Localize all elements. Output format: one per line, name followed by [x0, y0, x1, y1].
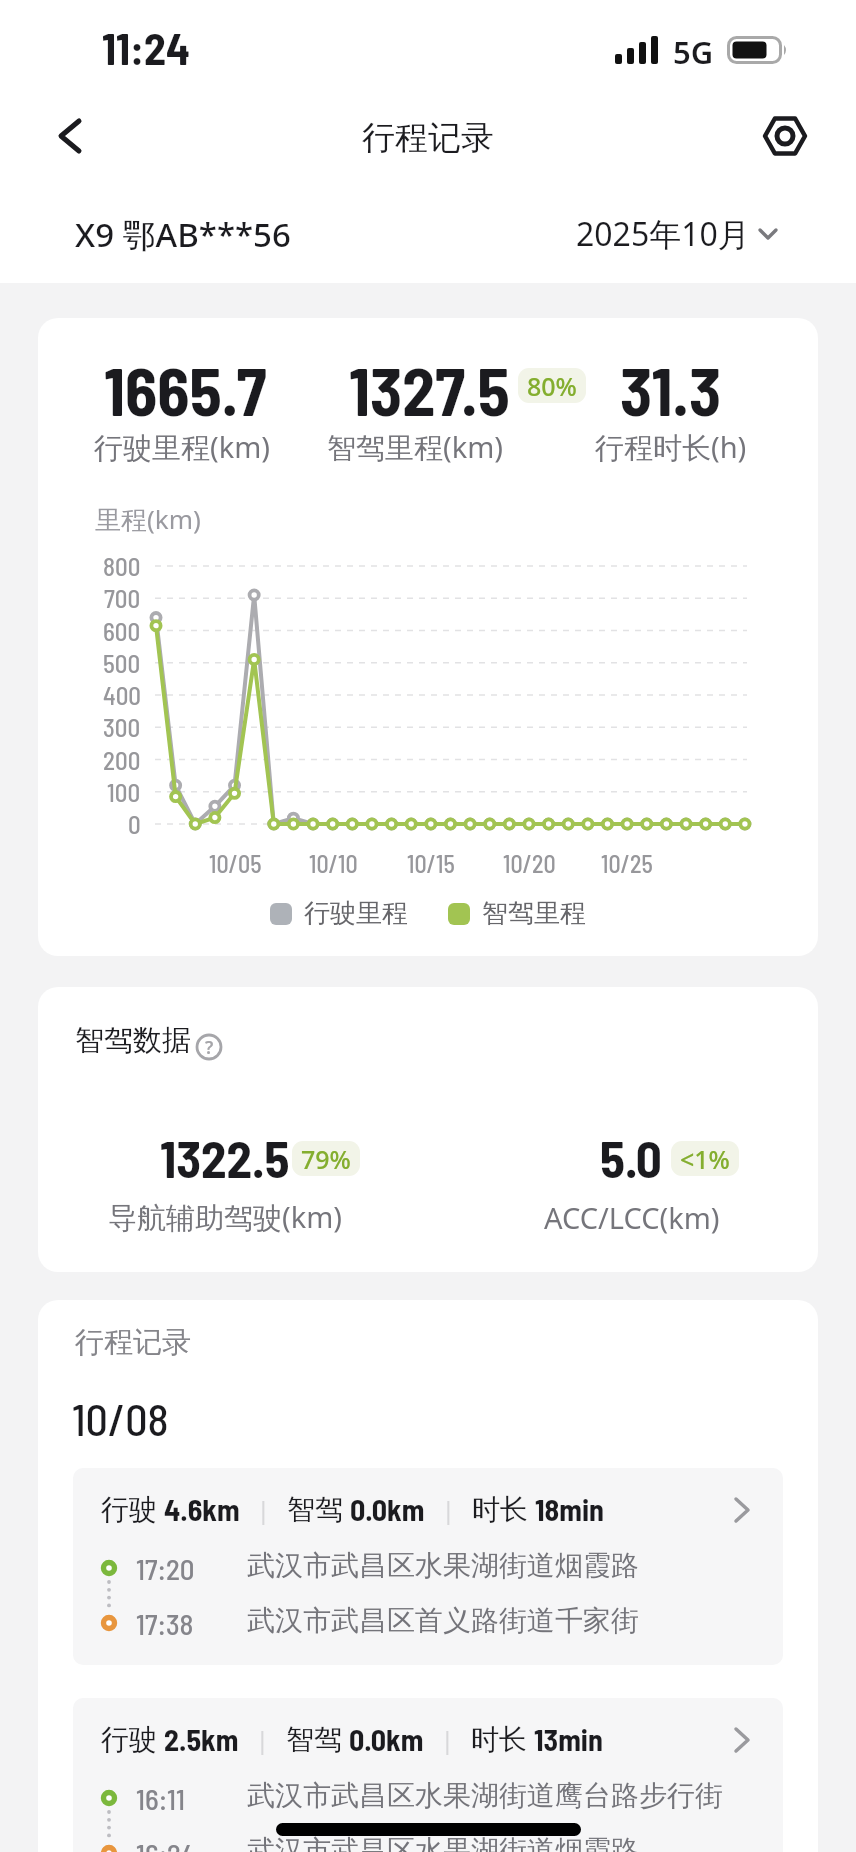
staticText: 17:20 [136, 1551, 195, 1586]
button[interactable]: 行驶 [73, 1698, 783, 1852]
staticText: 16:11 [136, 1781, 185, 1816]
staticText: 10/08 [72, 1392, 169, 1445]
staticText: 智驾数据 [75, 1022, 191, 1059]
staticText: 5.0 [600, 1127, 662, 1188]
staticText: 武汉市武昌区水果湖街道鹰台路步行街 [247, 1778, 723, 1813]
staticText: | [442, 1494, 455, 1525]
staticText: 0.0km [349, 1721, 424, 1757]
staticText: 4.6km [164, 1491, 240, 1527]
staticText: <1% [680, 1142, 730, 1176]
staticText: 导航辅助驾驶(km) [108, 1197, 343, 1237]
button[interactable]: 2025年10月 [576, 212, 778, 256]
staticText: 2.5km [164, 1721, 239, 1757]
staticText: 800 [103, 551, 141, 581]
staticText: 5G [673, 31, 714, 73]
staticText: 武汉市武昌区水果湖街道烟霞路 [247, 1833, 639, 1852]
staticText: 智驾 [287, 1492, 343, 1527]
staticText: 100 [107, 777, 141, 807]
button[interactable]: ? [196, 1034, 222, 1060]
staticText: 700 [104, 583, 141, 613]
staticText: 13min [534, 1721, 603, 1757]
staticText: 行程记录 [362, 117, 494, 159]
staticText: 智驾 [286, 1722, 342, 1757]
staticText: 智驾里程 [482, 897, 586, 930]
staticText: 10/20 [503, 849, 556, 878]
staticText: 行程记录 [75, 1324, 191, 1361]
staticText: 18min [535, 1491, 604, 1527]
staticText: 79% [301, 1142, 351, 1176]
staticText: 智驾里程(km) [327, 427, 504, 467]
staticText: 10/05 [209, 849, 262, 878]
staticText: 400 [103, 680, 141, 710]
staticText: 500 [103, 648, 141, 678]
staticText: 行驶里程 [304, 897, 408, 930]
staticText: 时长 [472, 1492, 528, 1527]
staticText: X9 鄂AB***56 [75, 212, 291, 257]
staticText: 200 [103, 745, 141, 775]
staticText: 1322.5 [160, 1127, 290, 1188]
staticText: 11:24 [102, 21, 190, 74]
staticText: 17:38 [136, 1606, 194, 1641]
staticText: 10/10 [309, 849, 358, 878]
staticText: 600 [103, 616, 141, 646]
staticText: 1665.7 [104, 350, 267, 429]
staticText: 行驶里程(km) [94, 427, 271, 467]
staticText: 里程(km) [95, 501, 201, 537]
staticText: 80% [527, 369, 577, 403]
staticText: 10/25 [601, 849, 653, 878]
button[interactable] [40, 106, 100, 166]
button[interactable]: 行驶 [73, 1468, 783, 1665]
staticText: 1327.5 [349, 350, 510, 429]
staticText: 武汉市武昌区首义路街道千家街 [247, 1603, 639, 1638]
staticText: 行驶 [101, 1722, 157, 1757]
staticText: | [256, 1724, 269, 1755]
staticText: 0 [128, 809, 141, 839]
staticText: 武汉市武昌区水果湖街道烟霞路 [247, 1548, 639, 1583]
staticText: | [257, 1494, 270, 1525]
staticText: 300 [103, 712, 141, 742]
staticText: 行程时长(h) [595, 427, 747, 467]
staticText: | [441, 1724, 454, 1755]
button[interactable] [755, 106, 815, 166]
staticText: 10/15 [407, 849, 455, 878]
staticText: 16:24 [136, 1836, 196, 1852]
staticText: ACC/LCC(km) [544, 1198, 720, 1237]
staticText: ? [205, 1035, 214, 1060]
staticText: 2025年10月 [576, 212, 750, 256]
staticText: 行驶 [101, 1492, 157, 1527]
staticText: 0.0km [350, 1491, 425, 1527]
staticText: 31.3 [620, 350, 722, 429]
staticText: 时长 [471, 1722, 527, 1757]
